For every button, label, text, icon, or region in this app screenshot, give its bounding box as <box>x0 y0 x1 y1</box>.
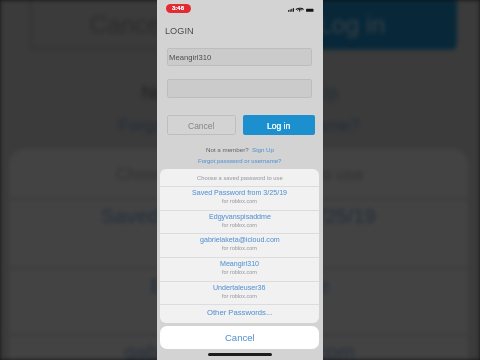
button[interactable] <box>167 79 312 98</box>
staticText: gabrielaketa@icloud.com <box>124 342 356 360</box>
button[interactable]: Saved Password from 3/25/19 <box>160 187 319 211</box>
staticText: Cancel <box>188 121 215 130</box>
staticText: Choose a saved password to use <box>197 175 283 181</box>
staticText: Log in <box>318 9 387 35</box>
button[interactable]: Forgot password or username? <box>0 116 480 137</box>
button[interactable]: Edgyvanspisaddme <box>9 270 468 339</box>
button[interactable]: Sign Up <box>252 146 275 153</box>
staticText: 3:46 <box>172 5 185 12</box>
button[interactable]: Saved Password from 3/25/19 <box>9 200 468 270</box>
staticText: for roblox.com <box>188 301 289 319</box>
staticText: for roblox.com <box>222 198 257 204</box>
staticText: Cancel <box>90 9 168 35</box>
staticText: Choose a saved password to use <box>116 165 364 183</box>
staticText: Meangirl310 <box>220 260 260 268</box>
staticText: for roblox.com <box>222 293 257 299</box>
button[interactable]: Log in <box>243 115 315 135</box>
button[interactable]: Meangirl310 <box>160 258 319 282</box>
staticText: Saved Password from 3/25/19 <box>192 189 288 197</box>
button[interactable]: Cancel <box>160 326 319 349</box>
staticText: Edgyvanspisaddme <box>209 213 271 221</box>
staticText: Edgyvanspisaddme <box>150 275 330 298</box>
staticText: for roblox.com <box>222 222 257 228</box>
staticText: Not a member? <box>206 146 249 153</box>
staticText: Undertaleuser36 <box>213 284 266 292</box>
staticText: Forgot password or username? <box>198 158 282 165</box>
staticText: Forgot password or username? <box>118 116 361 137</box>
staticText: for roblox.com <box>188 232 289 249</box>
button[interactable]: gabrielaketa@icloud.com <box>160 234 319 258</box>
staticText: for roblox.com <box>222 269 257 275</box>
other: Cellular, Wi-Fi and battery status <box>288 5 314 12</box>
button[interactable]: Log in <box>249 0 457 50</box>
staticText: Saved Password from 3/25/19 <box>101 206 379 229</box>
staticText: LOGIN <box>165 26 194 36</box>
staticText: Sign Up <box>252 146 275 153</box>
staticText: Log in <box>267 121 291 130</box>
button[interactable]: Cancel <box>29 0 228 50</box>
staticText: gabrielaketa@icloud.com <box>200 236 280 244</box>
button[interactable]: Edgyvanspisaddme <box>160 211 319 235</box>
button[interactable]: Forgot password or username? <box>157 158 323 165</box>
button[interactable]: gabrielaketa@icloud.com <box>9 336 468 360</box>
button[interactable]: Meangirl310 <box>167 48 312 66</box>
staticText: Cancel <box>225 332 255 343</box>
button[interactable]: Sign Up <box>275 82 341 102</box>
staticText: Meangirl310 <box>169 53 212 62</box>
staticText: for roblox.com <box>222 245 257 251</box>
button[interactable]: Other Passwords... <box>160 304 319 321</box>
button[interactable]: Undertaleuser36 <box>160 282 319 306</box>
staticText: Other Passwords... <box>207 308 273 317</box>
staticText: Not a member? <box>142 82 266 102</box>
button[interactable]: Cancel <box>167 115 236 135</box>
staticText: Sign Up <box>275 82 341 102</box>
